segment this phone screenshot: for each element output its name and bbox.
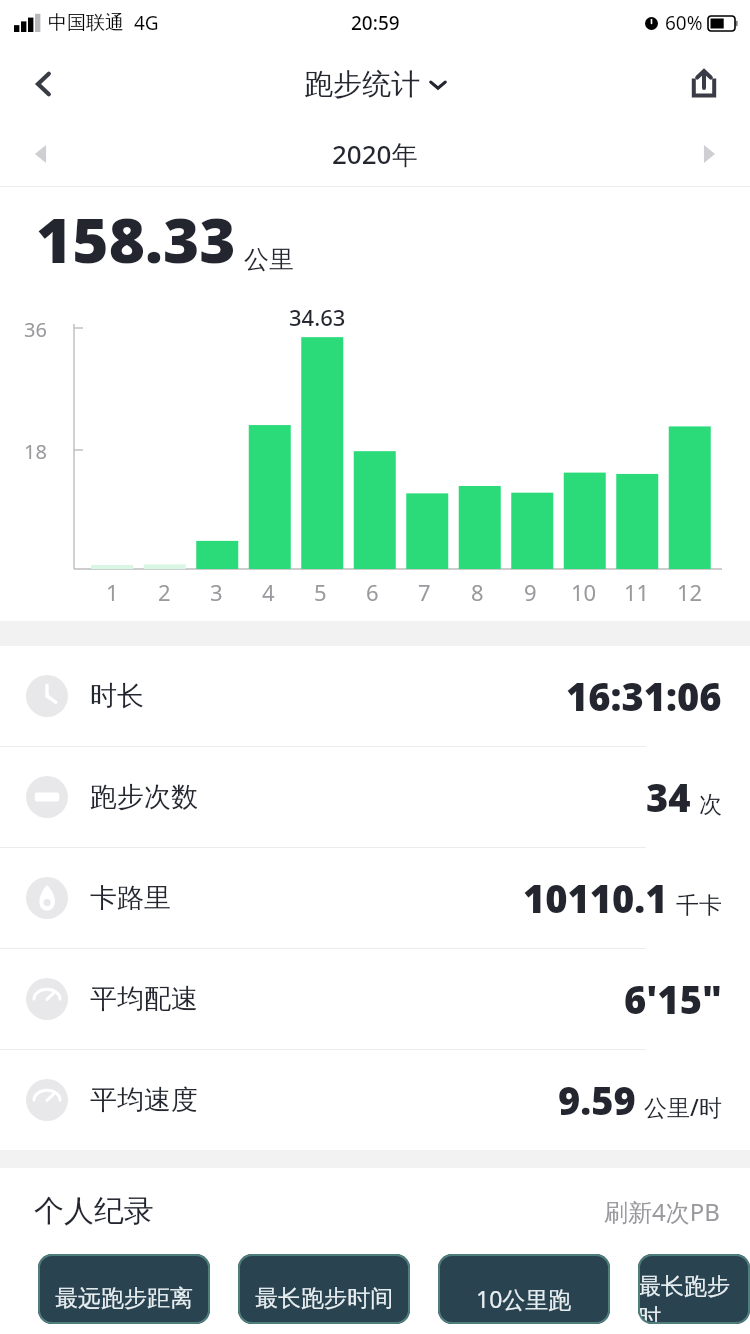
staticText: 6'15": [624, 973, 722, 1025]
staticText: 最远跑步距离: [55, 1284, 193, 1313]
staticText: 158.33: [36, 197, 236, 281]
staticText: 10: [571, 577, 597, 607]
button[interactable]: 平均配速: [0, 949, 750, 1049]
button[interactable]: Back: [18, 58, 70, 110]
staticText: 18: [24, 438, 47, 465]
staticText: 1: [106, 577, 119, 607]
button[interactable]: 刷新4次PB: [604, 1195, 720, 1228]
button[interactable]: Previous year: [18, 131, 64, 177]
staticText: 卡路里: [90, 881, 171, 915]
staticText: 8: [471, 577, 484, 607]
staticText: 16:31:06: [566, 670, 722, 722]
staticText: 中国联通: [48, 11, 124, 35]
staticText: 跑步统计: [304, 66, 420, 103]
staticText: 4: [262, 577, 275, 607]
staticText: 最长跑步时: [638, 1272, 750, 1324]
button[interactable]: 最远跑步距离: [38, 1254, 210, 1324]
staticText: 3: [210, 577, 223, 607]
staticText: 10公里跑: [476, 1283, 572, 1314]
staticText: 平均速度: [90, 1083, 198, 1117]
button[interactable]: 最长跑步时: [638, 1254, 750, 1324]
staticText: 12: [677, 577, 703, 607]
staticText: 公里: [244, 244, 294, 275]
button[interactable]: 卡路里: [0, 848, 750, 948]
staticText: 11: [624, 577, 650, 607]
staticText: 5: [314, 577, 327, 607]
staticText: 2020年: [332, 136, 418, 172]
button[interactable]: 时长: [0, 646, 750, 746]
button[interactable]: Next year: [686, 131, 732, 177]
button[interactable]: 平均速度: [0, 1050, 750, 1150]
button[interactable]: Share: [678, 58, 730, 110]
staticText: 10110.1: [523, 872, 668, 924]
staticText: 平均配速: [90, 982, 198, 1016]
staticText: 刷新4次PB: [604, 1195, 720, 1228]
staticText: 34.63: [289, 302, 346, 332]
staticText: 4G: [134, 10, 159, 36]
staticText: 34: [646, 771, 691, 823]
button[interactable]: 10公里跑: [438, 1254, 610, 1324]
staticText: 9: [524, 577, 537, 607]
staticText: 6: [366, 577, 379, 607]
staticText: 个人纪录: [34, 1192, 154, 1230]
staticText: 次: [699, 790, 722, 819]
staticText: 9.59: [558, 1074, 636, 1126]
button[interactable]: 跑步次数: [0, 747, 750, 847]
staticText: 2: [158, 577, 171, 607]
staticText: 60%: [665, 10, 703, 36]
staticText: 7: [418, 577, 431, 607]
staticText: 时长: [90, 679, 144, 713]
button[interactable]: 最长跑步时间: [238, 1254, 410, 1324]
button[interactable]: 跑步统计: [304, 66, 447, 103]
staticText: 36: [24, 316, 47, 343]
staticText: 20:59: [351, 10, 400, 36]
staticText: 最长跑步时间: [255, 1284, 393, 1313]
staticText: 千卡: [676, 891, 722, 920]
staticText: 公里/时: [644, 1091, 722, 1122]
staticText: 跑步次数: [90, 780, 198, 814]
